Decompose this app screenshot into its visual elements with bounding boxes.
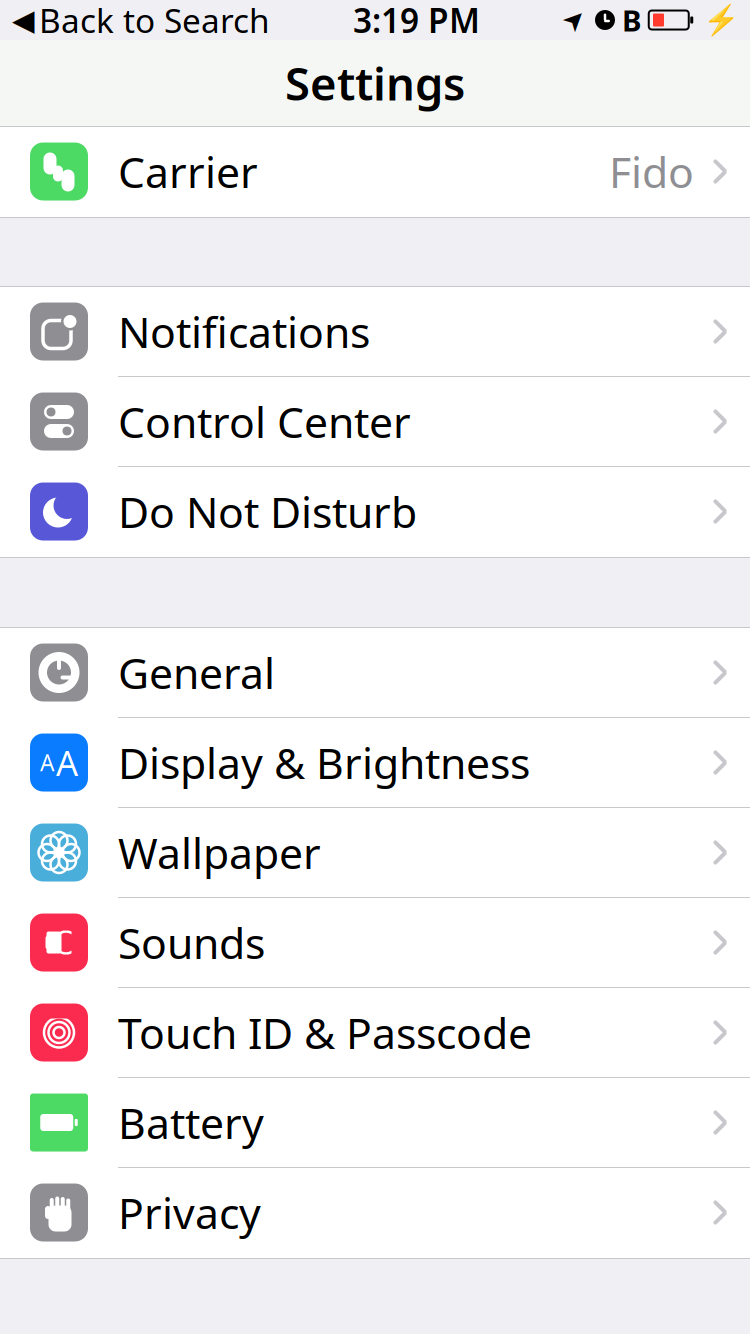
- button[interactable]: Do Not Disturb: [0, 467, 750, 557]
- staticText: Display & Brightness: [118, 734, 530, 791]
- staticText: General: [118, 644, 275, 701]
- staticText: B: [622, 0, 642, 39]
- button[interactable]: A: [0, 718, 750, 808]
- staticText: Settings: [285, 53, 465, 113]
- button[interactable]: Battery: [0, 1078, 750, 1168]
- button[interactable]: Control Center: [0, 377, 750, 467]
- staticText: Touch ID & Passcode: [118, 1004, 532, 1061]
- staticText: Sounds: [118, 914, 265, 971]
- staticText: Notifications: [118, 303, 370, 360]
- button[interactable]: General: [0, 628, 750, 718]
- staticText: 3:19 PM: [353, 0, 480, 42]
- button[interactable]: Carrier: [0, 127, 750, 217]
- staticText: Battery: [118, 1094, 264, 1151]
- staticText: Privacy: [118, 1184, 261, 1241]
- staticText: Fido: [609, 143, 694, 200]
- staticText: A: [40, 747, 54, 777]
- staticText: Control Center: [118, 393, 411, 450]
- button[interactable]: Notifications: [0, 287, 750, 377]
- button[interactable]: Sounds: [0, 898, 750, 988]
- button[interactable]: Wallpaper: [0, 808, 750, 898]
- staticText: ➤: [563, 5, 585, 35]
- staticText: ⚡: [703, 3, 740, 37]
- staticText: Carrier: [118, 143, 258, 200]
- staticText: ◀: [12, 3, 35, 37]
- staticText: A: [56, 739, 78, 785]
- staticText: Do Not Disturb: [118, 483, 417, 540]
- button[interactable]: Touch ID & Passcode: [0, 988, 750, 1078]
- staticText: Wallpaper: [118, 824, 321, 881]
- button[interactable]: Privacy: [0, 1168, 750, 1258]
- staticText: Back to Search: [39, 0, 270, 42]
